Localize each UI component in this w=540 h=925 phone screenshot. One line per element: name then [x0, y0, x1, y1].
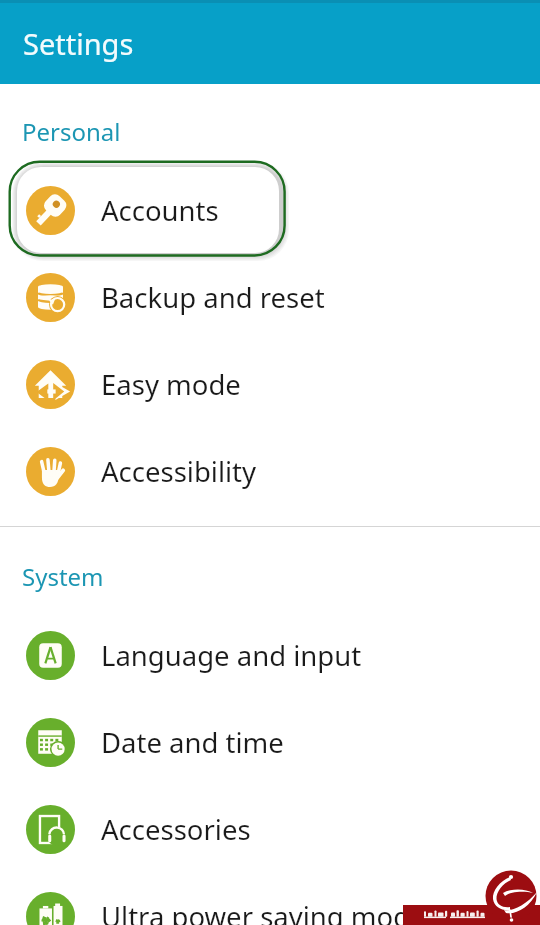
button[interactable]: Accessories [0, 786, 540, 873]
staticText: Date and time [101, 724, 284, 761]
staticText: System [22, 560, 104, 593]
staticText: Personal [22, 115, 121, 148]
other: Accessories [26, 805, 75, 854]
button[interactable]: Language and input [0, 612, 540, 699]
other: Date and time [26, 718, 75, 767]
staticText: Language and input [101, 637, 362, 674]
other: Easy mode [26, 360, 75, 409]
button[interactable]: Date and time [0, 699, 540, 786]
staticText: Backup and reset [101, 279, 325, 316]
button[interactable]: Accessibility [0, 428, 540, 515]
other: Language and input [26, 631, 75, 680]
button[interactable]: Backup and reset [0, 254, 540, 341]
staticText: Accessories [101, 811, 251, 848]
staticText: Accessibility [101, 453, 257, 490]
staticText: Accounts [101, 192, 219, 229]
button[interactable]: Ultra power saving mode [0, 873, 540, 925]
staticText: Ultra power saving mode [101, 898, 426, 925]
button[interactable]: Settings [0, 0, 540, 84]
button[interactable]: Easy mode [0, 341, 540, 428]
staticText: Settings [23, 24, 134, 63]
other: Accessibility [26, 447, 75, 496]
other: Ultra power saving mode [26, 892, 75, 925]
other: Accounts [26, 186, 75, 235]
other: Backup and reset [26, 273, 75, 322]
button[interactable]: Accounts [0, 167, 540, 254]
staticText: Easy mode [101, 366, 241, 403]
